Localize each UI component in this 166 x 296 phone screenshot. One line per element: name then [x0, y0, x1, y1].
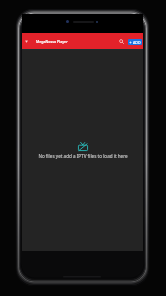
button[interactable]: Search [117, 37, 126, 46]
button[interactable]: ADD [128, 39, 142, 45]
button[interactable]: Menu [23, 38, 30, 45]
staticText: MegaNosso Player [36, 39, 68, 44]
staticText: No files yet add a IPTV files to load it… [38, 153, 128, 159]
staticText: ADD [133, 40, 141, 45]
